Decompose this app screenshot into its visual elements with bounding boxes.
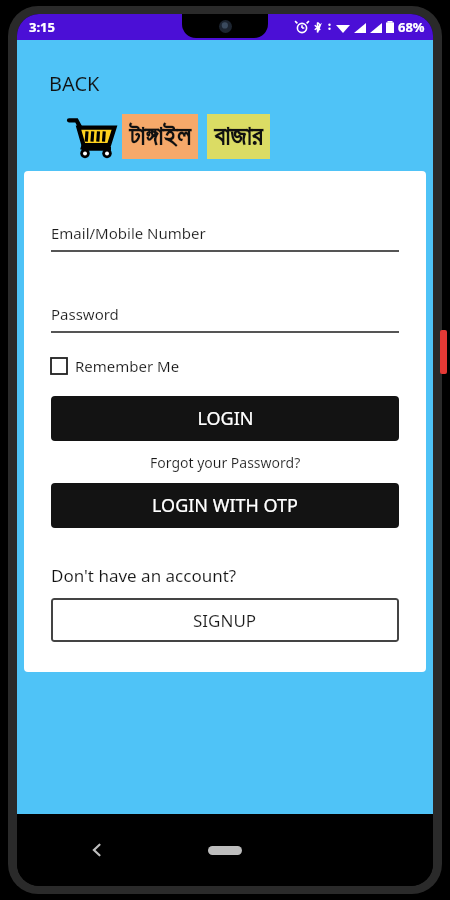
button[interactable]: Password [51, 304, 399, 333]
button[interactable]: BACK [45, 66, 104, 101]
button[interactable]: Email/Mobile Number [51, 223, 399, 252]
staticText: টাঙ্গাইল [129, 123, 191, 150]
staticText: SIGNUP [193, 609, 257, 632]
button[interactable]: LOGIN WITH OTP [51, 483, 399, 528]
staticText: BACK [49, 70, 100, 97]
button[interactable]: Back [79, 832, 115, 868]
staticText: Remember Me [75, 356, 180, 376]
staticText: বাজার [214, 123, 263, 150]
staticText: LOGIN WITH OTP [152, 493, 298, 518]
staticText: LOGIN [197, 406, 254, 431]
button[interactable]: Home [196, 836, 254, 864]
button[interactable]: Forgot your Password? [51, 451, 399, 474]
staticText: 68% [398, 18, 425, 36]
button[interactable]: Remember Me [51, 354, 180, 378]
staticText: Don't have an account? [51, 564, 237, 587]
staticText: Password [51, 304, 119, 324]
staticText: Forgot your Password? [150, 453, 301, 472]
staticText: 3:15 [29, 18, 55, 36]
staticText: Email/Mobile Number [51, 223, 206, 243]
button[interactable]: SIGNUP [51, 598, 399, 642]
button[interactable]: LOGIN [51, 396, 399, 441]
